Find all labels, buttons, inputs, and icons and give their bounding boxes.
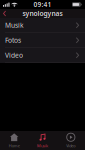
staticText: Video <box>66 143 75 148</box>
staticText: Musik <box>37 143 48 148</box>
button[interactable]: Home <box>0 131 28 150</box>
staticText: Fotos <box>5 36 21 45</box>
staticText: synologynas <box>22 9 62 18</box>
button[interactable]: Fotos <box>0 33 85 47</box>
button[interactable]: Video <box>0 48 85 62</box>
staticText: Musik <box>5 21 24 30</box>
staticText: Video <box>5 51 23 60</box>
button[interactable]: Musik <box>28 131 57 150</box>
button[interactable]: Back <box>0 9 11 18</box>
button[interactable]: Musik <box>0 18 85 32</box>
staticText: Home <box>9 143 20 148</box>
staticText: 09:41 <box>33 0 51 9</box>
button[interactable]: Video <box>57 131 85 150</box>
